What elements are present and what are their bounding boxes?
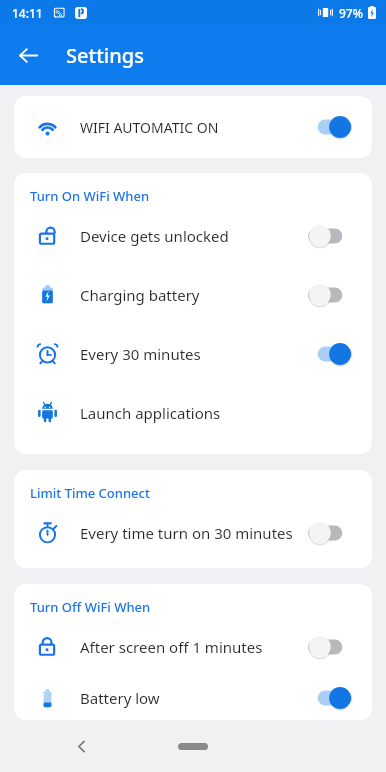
staticText: Turn Off WiFi When — [30, 598, 151, 616]
button[interactable]: On — [308, 685, 352, 711]
staticText: Device gets unlocked — [80, 226, 229, 246]
button[interactable]: Off — [308, 634, 352, 660]
button[interactable]: After screen off 1 minutes — [14, 617, 372, 676]
button[interactable]: Back — [64, 729, 98, 763]
staticText: Every time turn on 30 minutes — [80, 523, 293, 543]
button[interactable]: WIFI AUTOMATIC ON — [14, 96, 372, 158]
button[interactable]: Off — [308, 520, 352, 546]
staticText: Settings — [66, 42, 144, 69]
button[interactable]: Every 30 minutes — [14, 324, 372, 383]
staticText: Turn On WiFi When — [30, 187, 150, 205]
staticText: Charging battery — [80, 285, 200, 305]
button[interactable]: Battery low — [14, 676, 372, 720]
staticText: 97% — [339, 5, 363, 21]
staticText: After screen off 1 minutes — [80, 637, 263, 657]
staticText: Battery low — [80, 688, 160, 708]
button[interactable]: Launch applications — [14, 383, 372, 442]
staticText: Limit Time Connect — [30, 484, 150, 502]
button[interactable]: Home — [168, 729, 218, 763]
button[interactable]: Off — [308, 282, 352, 308]
staticText: Launch applications — [80, 403, 221, 423]
button[interactable]: Device gets unlocked — [14, 206, 372, 265]
button[interactable]: On — [308, 341, 352, 367]
staticText: WIFI AUTOMATIC ON — [80, 118, 219, 137]
staticText: Every 30 minutes — [80, 344, 201, 364]
button[interactable]: Back — [6, 33, 50, 77]
button[interactable]: On — [308, 114, 352, 140]
staticText: 14:11 — [12, 5, 43, 21]
button[interactable]: Off — [308, 223, 352, 249]
button[interactable]: Every time turn on 30 minutes — [14, 503, 372, 562]
button[interactable]: Charging battery — [14, 265, 372, 324]
